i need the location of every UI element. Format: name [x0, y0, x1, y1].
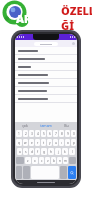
button[interactable]: v	[45, 157, 50, 164]
staticText: n	[59, 159, 61, 163]
button[interactable]: 4	[35, 130, 40, 137]
staticText: f	[37, 150, 39, 154]
staticText: k	[64, 150, 66, 154]
staticText: p	[73, 141, 75, 145]
staticText: q	[18, 141, 20, 145]
button[interactable]: t	[41, 139, 46, 146]
button[interactable]: p	[71, 139, 76, 146]
staticText: 5	[43, 132, 45, 136]
button[interactable]: ı	[59, 139, 64, 146]
button[interactable]: Ara	[68, 166, 76, 179]
button[interactable]: h	[48, 148, 54, 155]
staticText: s	[25, 150, 27, 154]
button[interactable]	[15, 63, 77, 71]
button[interactable]: 7	[53, 130, 58, 137]
staticText: e	[31, 141, 33, 145]
button[interactable]: r	[35, 139, 40, 146]
button[interactable]: Arama	[15, 40, 77, 47]
button[interactable]: tamam	[35, 122, 56, 129]
button[interactable]: 6	[47, 130, 52, 137]
button[interactable]: c	[39, 157, 44, 164]
button[interactable]: s	[23, 148, 28, 155]
staticText: Bu	[64, 123, 69, 128]
button[interactable]: Shift	[16, 157, 24, 164]
staticText: tamam	[40, 123, 52, 128]
button[interactable]: q	[16, 139, 22, 146]
staticText: 3	[31, 132, 33, 136]
staticText: h	[50, 150, 52, 154]
staticText: u	[55, 141, 57, 145]
button[interactable]: d	[29, 148, 34, 155]
staticText: ARAMA	[16, 11, 59, 26]
button[interactable]: e	[29, 139, 34, 146]
button[interactable]: f	[35, 148, 40, 155]
staticText: 2	[25, 132, 27, 136]
button[interactable]: k	[62, 148, 68, 155]
button[interactable]: g	[41, 148, 47, 155]
button[interactable]: o	[65, 139, 70, 146]
button[interactable]: Bu	[56, 122, 77, 129]
staticText: 7	[55, 132, 57, 136]
button[interactable]: z	[25, 157, 31, 164]
button[interactable]: 5	[41, 130, 46, 137]
staticText: a	[19, 150, 21, 154]
staticText: w	[24, 141, 27, 145]
button[interactable]	[15, 87, 77, 95]
button[interactable]: n	[57, 157, 62, 164]
button[interactable]: 2	[23, 130, 28, 137]
staticText: ÖZELLİĞİ	[61, 3, 92, 33]
staticText: g	[43, 150, 45, 154]
staticText: 0	[73, 132, 75, 136]
button[interactable]: x	[32, 157, 38, 164]
staticText: 4	[37, 132, 39, 136]
button[interactable]: 1	[16, 130, 22, 137]
button[interactable]	[15, 55, 77, 63]
staticText: 1	[18, 132, 20, 136]
button[interactable]: m	[63, 157, 68, 164]
staticText: b	[53, 159, 55, 163]
button[interactable]: 9	[65, 130, 70, 137]
staticText: x	[34, 159, 36, 163]
button[interactable]: b	[51, 157, 56, 164]
staticText: z	[27, 159, 29, 163]
button[interactable]: 0	[71, 130, 76, 137]
staticText: v	[47, 159, 49, 163]
button[interactable]: w	[23, 139, 28, 146]
staticText: d	[31, 150, 33, 154]
button[interactable]: 8	[59, 130, 64, 137]
button[interactable]: 3	[29, 130, 34, 137]
button[interactable]	[15, 95, 77, 103]
staticText: y	[49, 141, 51, 145]
staticText: o	[67, 141, 69, 145]
staticText: c	[41, 159, 43, 163]
staticText: 8	[61, 132, 63, 136]
button[interactable]: Backspace	[69, 157, 76, 164]
staticText: r	[37, 141, 39, 145]
button[interactable]: j	[55, 148, 61, 155]
button[interactable]	[15, 71, 77, 79]
button[interactable]: u	[53, 139, 58, 146]
button[interactable]: l	[69, 148, 75, 155]
button[interactable]: a	[17, 148, 22, 155]
staticText: ı	[61, 141, 62, 145]
button[interactable]: çok	[15, 122, 35, 129]
staticText: çok	[22, 123, 28, 128]
staticText: t	[43, 141, 45, 145]
staticText: 6	[49, 132, 51, 136]
staticText: m	[64, 159, 67, 163]
staticText: 9	[67, 132, 69, 136]
button[interactable]: y	[47, 139, 52, 146]
button[interactable]	[15, 79, 77, 87]
button[interactable]	[15, 47, 77, 55]
staticText: l	[72, 150, 73, 154]
staticText: j	[58, 150, 59, 154]
